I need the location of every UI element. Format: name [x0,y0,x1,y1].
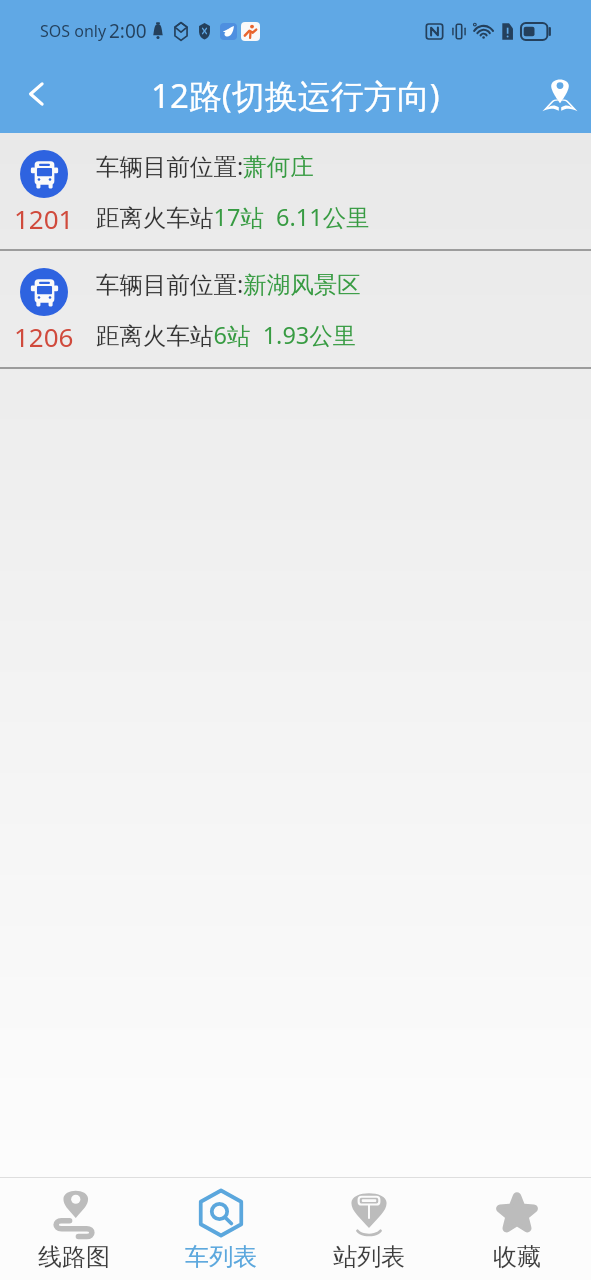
staticText: SOS only [40,20,107,42]
staticText: 线路图 [38,1242,110,1272]
staticText: 车辆目前位置:新湖风景区 [96,268,361,300]
staticText: 1201 [14,201,74,236]
staticText: 距离火车站6站 1.93公里 [96,319,357,351]
staticText: 车辆目前位置:萧何庄 [96,150,314,182]
button[interactable]: 车列表 [147,1178,295,1280]
button[interactable]: 线路图 [0,1178,147,1280]
staticText: 站列表 [333,1242,405,1272]
button[interactable]: 1201 [0,133,591,249]
staticText: 收藏 [493,1242,541,1272]
button[interactable]: Back [0,62,70,133]
staticText: 2:00 [109,18,147,44]
button[interactable]: 1206 [0,251,591,367]
staticText: 12路(切换运行方向) [151,73,440,118]
button[interactable]: 收藏 [443,1178,591,1280]
button[interactable]: Map [529,62,591,133]
staticText: 车列表 [185,1242,257,1272]
staticText: 1206 [14,319,74,354]
staticText: 距离火车站17站 6.11公里 [96,201,370,233]
button[interactable]: 站列表 [295,1178,443,1280]
